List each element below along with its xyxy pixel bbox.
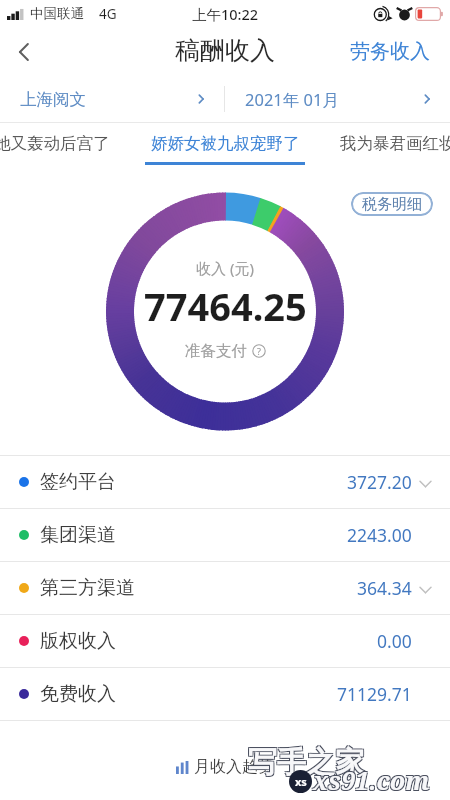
staticText: 4G: [99, 5, 117, 23]
button[interactable]: 免费收入: [0, 668, 450, 720]
staticText: 3727.20: [347, 470, 412, 494]
button[interactable]: Back: [0, 28, 50, 75]
staticText: 稿酬收入: [175, 35, 275, 66]
button[interactable]: 签约平台: [0, 456, 450, 508]
staticText: 77464.25: [144, 280, 307, 332]
staticText: 写手之家: [249, 745, 365, 782]
staticText: 她又轰动后宫了: [0, 133, 110, 154]
button[interactable]: 集团渠道: [0, 509, 450, 561]
button[interactable]: 娇娇女被九叔宠野了: [139, 123, 311, 163]
staticText: 写手之家: [247, 743, 363, 780]
staticText: 劳务收入: [350, 39, 430, 64]
staticText: 364.34: [357, 576, 412, 600]
staticText: 月收入趋势: [194, 757, 274, 777]
button[interactable]: 版权收入: [0, 615, 450, 667]
button[interactable]: 我为暴君画红妆: [312, 123, 450, 163]
staticText: 版权收入: [40, 629, 116, 653]
staticText: 第三方渠道: [40, 576, 135, 600]
button[interactable]: 2021年 01月: [225, 75, 450, 123]
staticText: 上海阅文: [20, 89, 86, 110]
button[interactable]: 税务明细: [351, 192, 433, 216]
staticText: 写手之家: [248, 744, 364, 781]
staticText: 集团渠道: [40, 523, 116, 547]
staticText: 我为暴君画红妆: [340, 133, 450, 154]
button[interactable]: 准备支付: [185, 341, 266, 361]
staticText: 71129.71: [337, 682, 412, 706]
staticText: 2021年 01月: [245, 88, 339, 111]
staticText: xs91.com: [314, 762, 431, 796]
button[interactable]: 她又轰动后宫了: [0, 123, 138, 163]
button[interactable]: 月收入趋势: [170, 751, 280, 783]
staticText: xs: [295, 774, 307, 789]
staticText: 签约平台: [40, 470, 116, 494]
staticText: 0.00: [377, 629, 412, 653]
staticText: 准备支付: [185, 341, 247, 361]
button[interactable]: 第三方渠道: [0, 562, 450, 614]
button[interactable]: 上海阅文: [0, 75, 224, 123]
staticText: xs91.com: [314, 764, 431, 798]
staticText: 2243.00: [347, 523, 412, 547]
staticText: 写手之家: [247, 745, 363, 782]
staticText: 免费收入: [40, 682, 116, 706]
staticText: xs91.com: [312, 764, 429, 798]
staticText: 收入 (元): [196, 258, 254, 278]
staticText: 娇娇女被九叔宠野了: [151, 133, 300, 154]
staticText: 写手之家: [249, 743, 365, 780]
staticText: 上午10:22: [192, 4, 259, 24]
staticText: xs91.com: [313, 763, 430, 797]
staticText: ?: [257, 345, 261, 357]
button[interactable]: 劳务收入: [336, 28, 450, 75]
staticText: 中国联通: [30, 5, 84, 22]
staticText: 税务明细: [362, 195, 422, 214]
staticText: xs91.com: [312, 762, 429, 796]
